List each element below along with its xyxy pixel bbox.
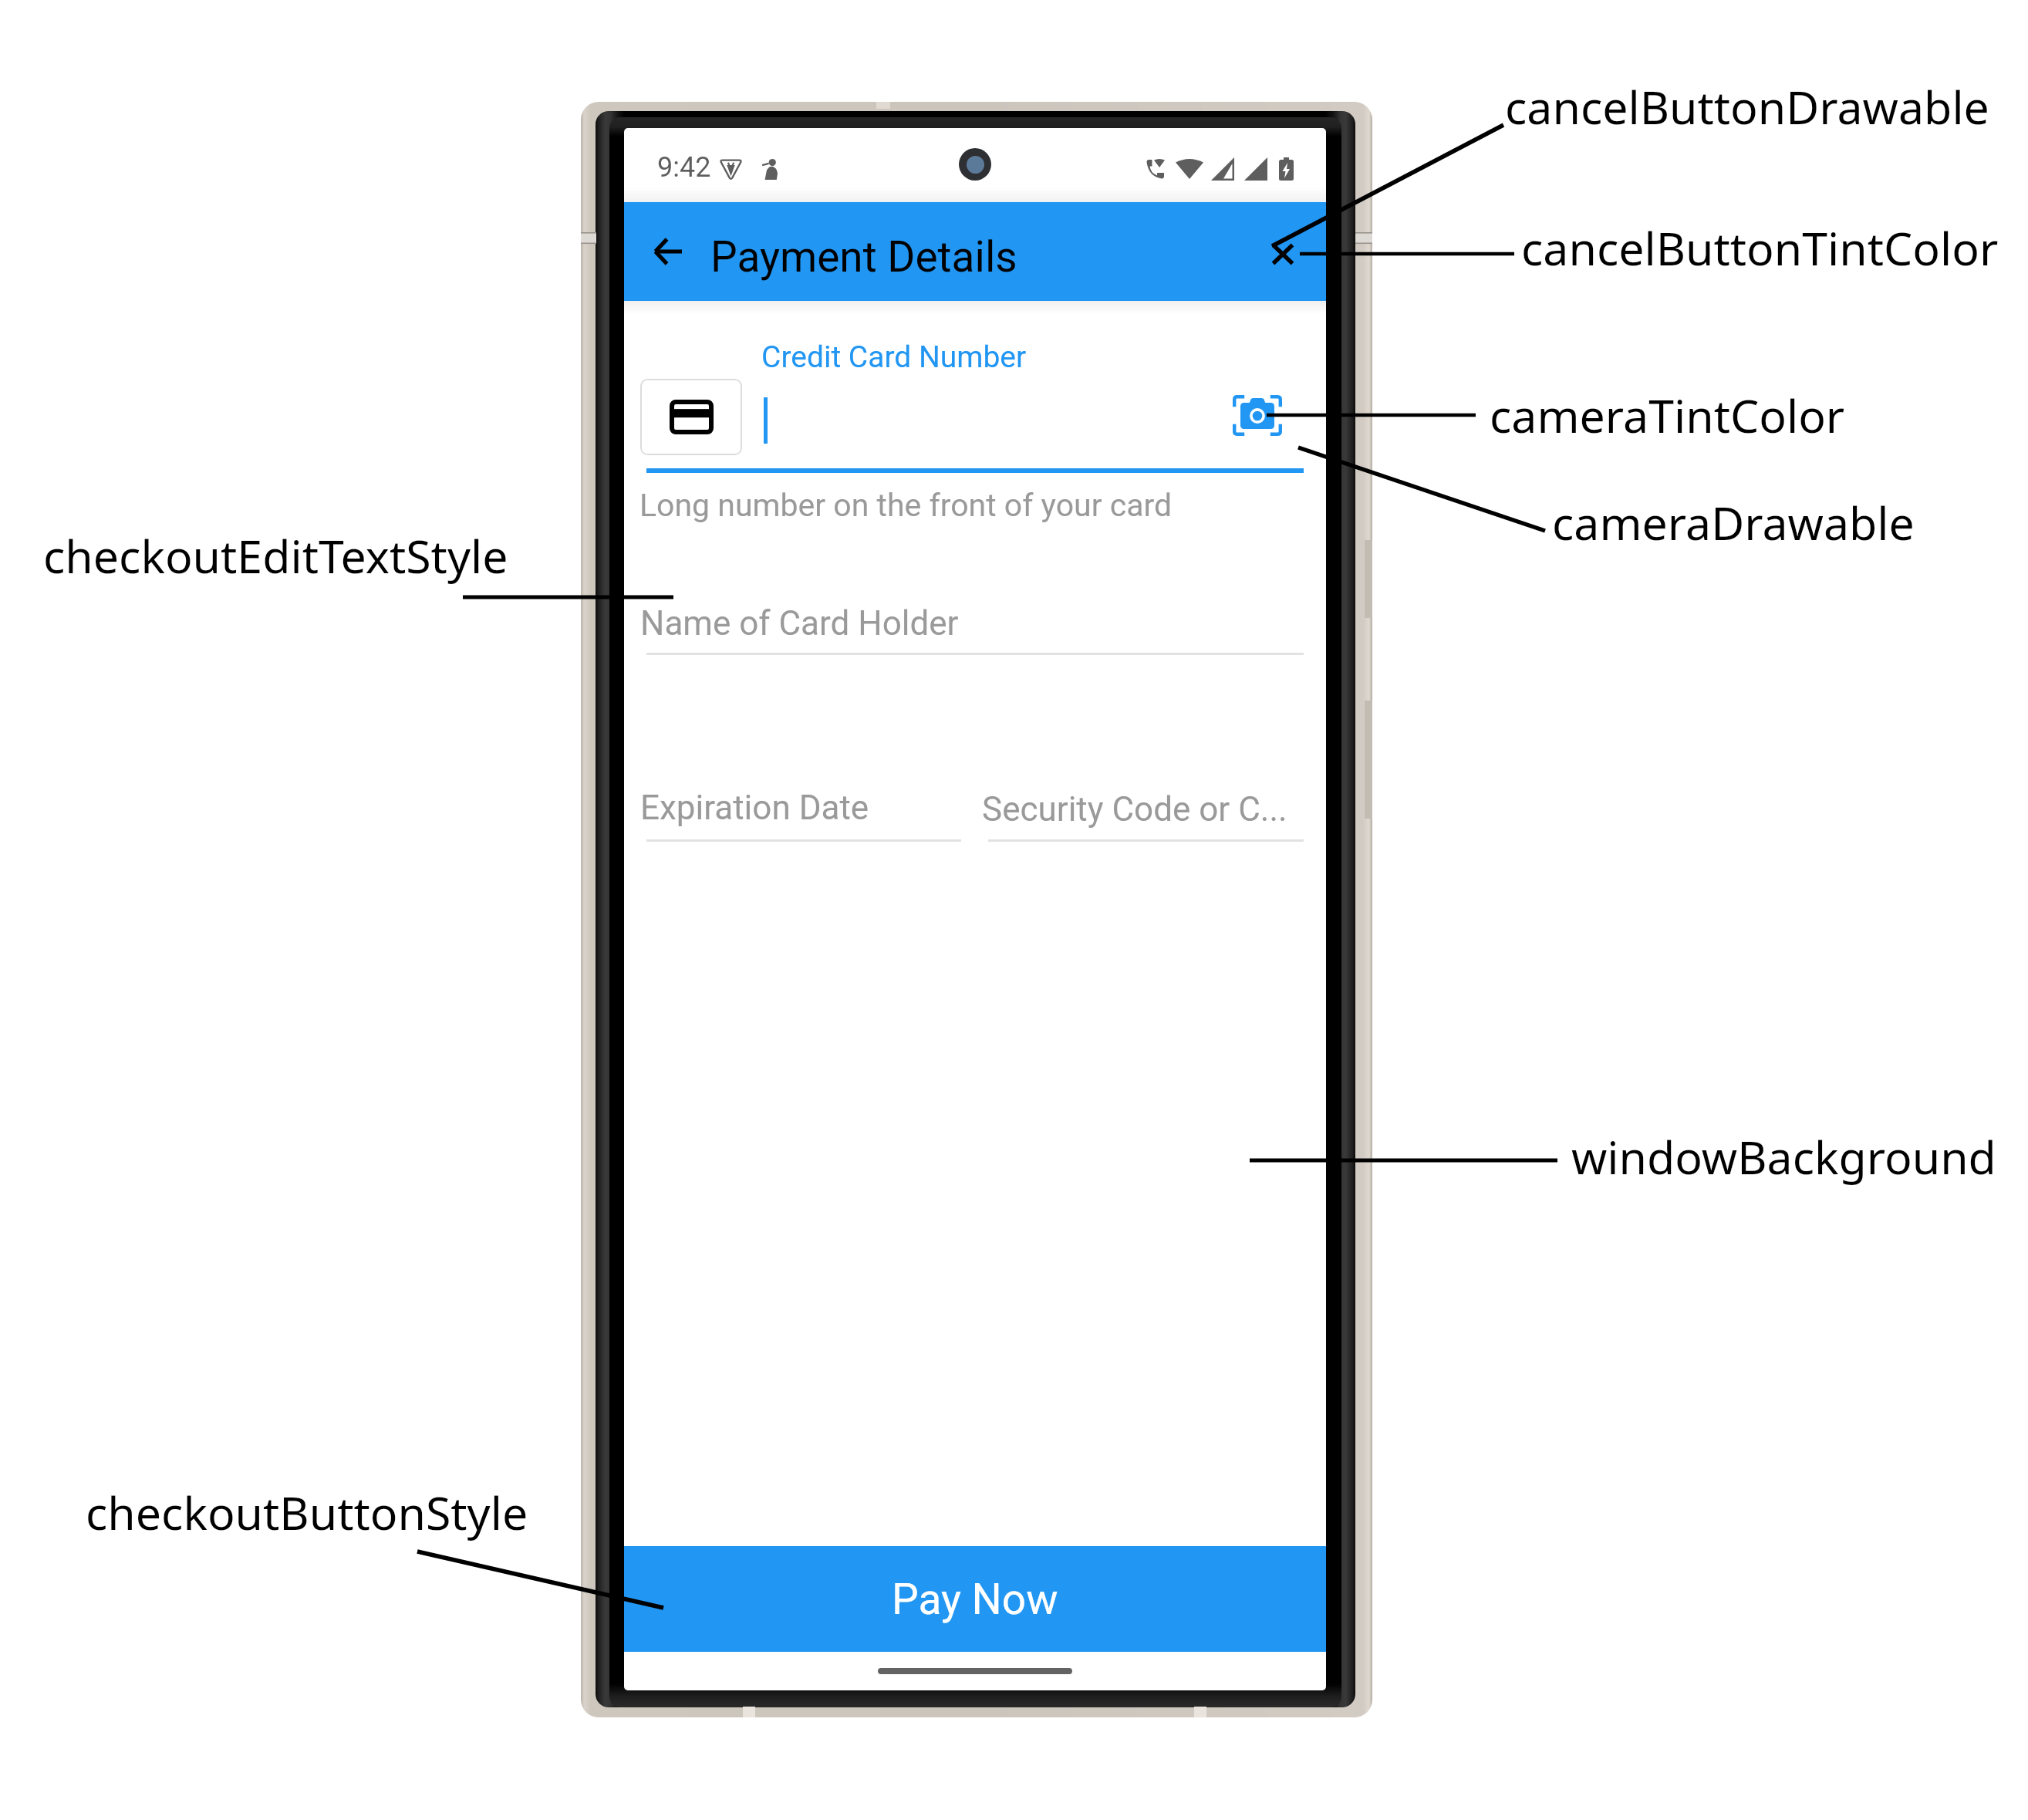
staticText: cameraDrawable [1552, 491, 1915, 553]
button[interactable]: Cancel [1254, 225, 1312, 283]
button[interactable]: Back [638, 221, 698, 282]
staticText: checkoutButtonStyle [86, 1481, 528, 1543]
staticText: cameraTintColor [1490, 384, 1845, 446]
staticText: Security Code or C... [982, 789, 1287, 829]
button[interactable]: Pay Now [624, 1546, 1326, 1652]
staticText: cancelButtonDrawable [1505, 76, 1989, 137]
staticText: Name of Card Holder [640, 603, 959, 643]
button[interactable]: Scan card with camera [1217, 380, 1297, 451]
staticText: Pay Now [892, 1575, 1058, 1624]
staticText: Long number on the front of your card [639, 487, 1173, 524]
staticText: Expiration Date [640, 788, 869, 828]
staticText: cancelButtonTintColor [1521, 217, 1999, 279]
staticText: 9:42 [657, 151, 711, 184]
staticText: checkoutEditTextStyle [43, 525, 508, 586]
staticText: Credit Card Number [761, 339, 1027, 375]
staticText: windowBackground [1571, 1126, 1996, 1187]
staticText: Payment Details [710, 232, 1017, 282]
